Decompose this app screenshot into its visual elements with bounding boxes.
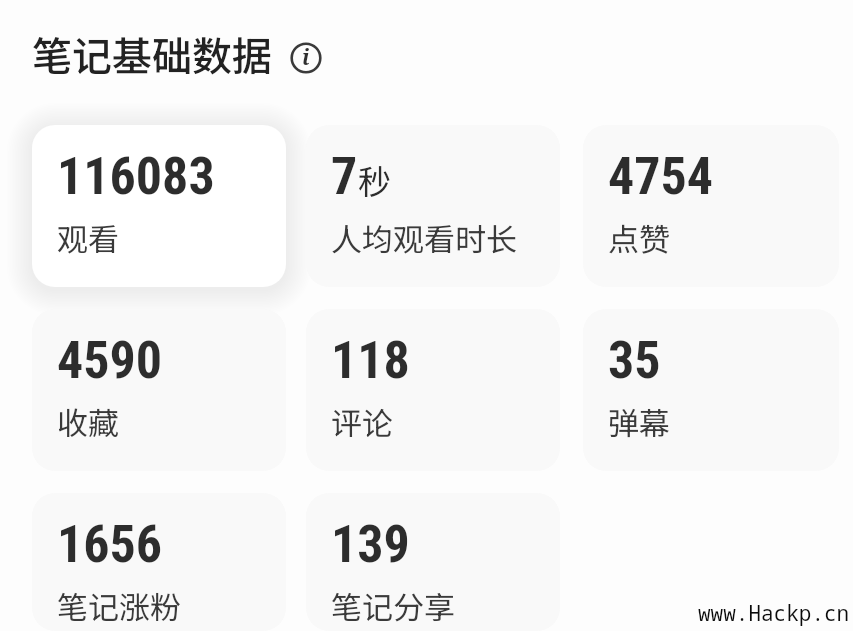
staticText: 人均观看时长 — [331, 215, 517, 260]
staticText: www.Hackp.cn — [698, 599, 850, 628]
staticText: 观看 — [57, 215, 119, 260]
staticText: 笔记分享 — [331, 583, 455, 628]
staticText: 弹幕 — [608, 399, 670, 444]
button[interactable]: 116083 — [32, 125, 286, 287]
staticText: 点赞 — [608, 215, 670, 260]
staticText: 118 — [331, 330, 410, 391]
staticText: 1656 — [57, 514, 163, 575]
staticText: 7 — [331, 146, 358, 207]
staticText: 收藏 — [57, 399, 119, 444]
button[interactable]: 139 — [306, 493, 560, 631]
staticText: 4590 — [57, 330, 163, 391]
staticText: 笔记涨粉 — [57, 583, 181, 628]
button[interactable]: 7 — [306, 125, 560, 287]
button[interactable]: 4590 — [32, 309, 286, 471]
button[interactable]: 118 — [306, 309, 560, 471]
button[interactable]: 4754 — [583, 125, 839, 287]
staticText: i — [302, 43, 310, 72]
staticText: 35 — [608, 330, 661, 391]
staticText: 4754 — [608, 146, 714, 207]
staticText: 笔记基础数据 — [32, 25, 272, 83]
button[interactable]: 1656 — [32, 493, 286, 631]
staticText: 秒 — [358, 156, 391, 204]
staticText: 评论 — [331, 399, 393, 444]
staticText: 116083 — [57, 146, 215, 207]
button[interactable]: 35 — [583, 309, 839, 471]
button[interactable]: About these metrics — [290, 42, 322, 74]
staticText: 139 — [331, 514, 410, 575]
